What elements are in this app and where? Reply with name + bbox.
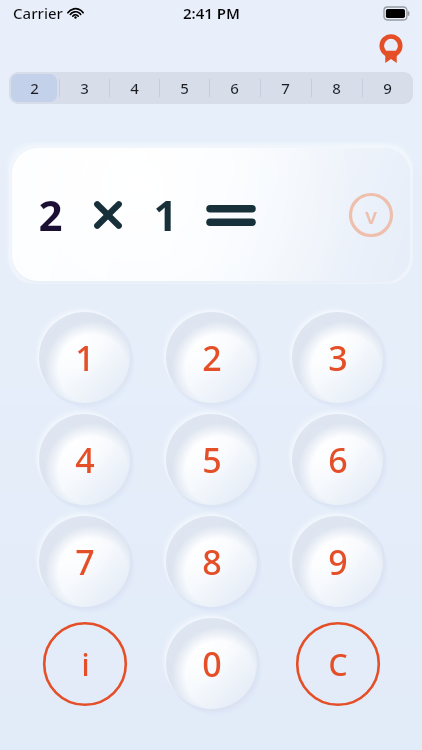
- staticText: i: [81, 644, 90, 685]
- button[interactable]: 9: [362, 72, 413, 104]
- staticText: 1: [75, 335, 95, 381]
- button[interactable]: 0: [163, 615, 260, 712]
- staticText: 2: [202, 335, 222, 381]
- staticText: 3: [80, 78, 89, 98]
- button[interactable]: Clear: [295, 621, 381, 707]
- button[interactable]: 9: [289, 513, 386, 610]
- staticText: 3: [328, 335, 348, 381]
- staticText: 2: [38, 186, 63, 243]
- button[interactable]: Voice: [348, 192, 394, 238]
- staticText: 8: [202, 539, 222, 585]
- button[interactable]: Achievements: [374, 32, 408, 66]
- staticText: 4: [130, 78, 139, 98]
- staticText: v: [365, 200, 377, 230]
- staticText: 9: [328, 539, 348, 585]
- button[interactable]: 6: [209, 72, 260, 104]
- button[interactable]: 5: [159, 72, 209, 104]
- staticText: 5: [180, 78, 189, 98]
- staticText: 6: [230, 78, 239, 98]
- staticText: 9: [383, 78, 392, 98]
- button[interactable]: 3: [59, 72, 109, 104]
- staticText: 7: [75, 539, 95, 585]
- button[interactable]: 8: [311, 72, 362, 104]
- staticText: C: [328, 644, 348, 685]
- staticText: 7: [281, 78, 290, 98]
- button[interactable]: 2: [163, 309, 260, 406]
- staticText: 2: [30, 78, 39, 98]
- staticText: Carrier: [13, 3, 63, 23]
- button[interactable]: 4: [36, 411, 133, 508]
- button[interactable]: 7: [260, 72, 311, 104]
- button[interactable]: 5: [163, 411, 260, 508]
- staticText: 2:41 PM: [183, 3, 240, 23]
- staticText: 0: [202, 641, 222, 687]
- staticText: 4: [75, 437, 95, 483]
- button[interactable]: 6: [289, 411, 386, 508]
- button[interactable]: 7: [36, 513, 133, 610]
- button[interactable]: 3: [289, 309, 386, 406]
- staticText: 6: [328, 437, 348, 483]
- button[interactable]: 1: [36, 309, 133, 406]
- staticText: 5: [202, 437, 222, 483]
- button[interactable]: Info: [42, 621, 128, 707]
- button[interactable]: 2: [9, 72, 59, 104]
- button[interactable]: 4: [109, 72, 159, 104]
- staticText: 8: [332, 78, 341, 98]
- staticText: 1: [153, 186, 178, 243]
- button[interactable]: 8: [163, 513, 260, 610]
